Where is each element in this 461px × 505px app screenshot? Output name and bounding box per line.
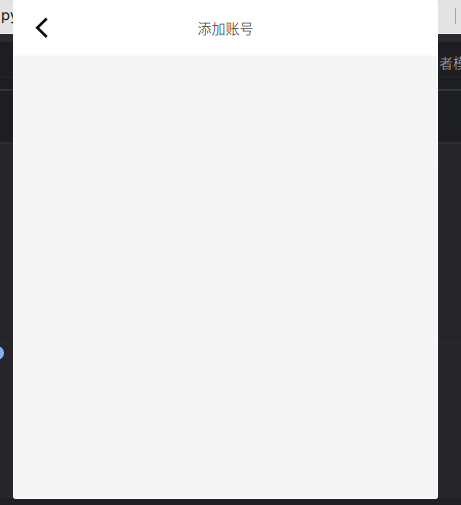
staticText: 添加账号 [197,18,253,38]
staticText: py [1,6,18,24]
staticText: 开发者模式 [411,52,461,72]
button[interactable]: py [1,6,18,24]
button[interactable]: Back [14,0,59,55]
